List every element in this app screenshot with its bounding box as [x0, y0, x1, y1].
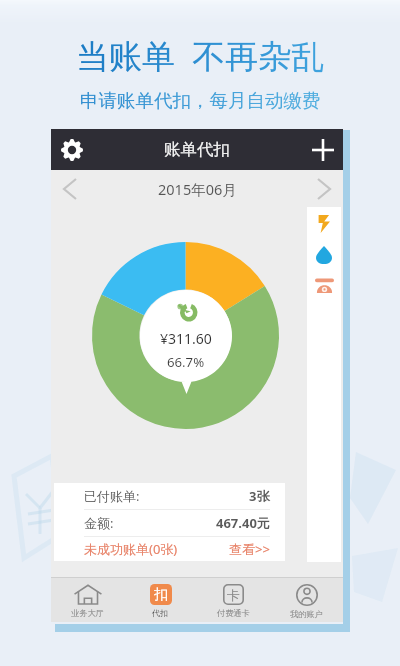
staticText: 66.7% — [167, 353, 205, 371]
staticText: 扣 — [154, 586, 168, 604]
button[interactable]: Settings — [51, 129, 92, 170]
button[interactable]: Next month — [305, 170, 343, 208]
button[interactable]: 业务大厅 — [51, 578, 124, 622]
button[interactable]: 已付账单: — [54, 483, 285, 509]
staticText: 金额: — [84, 514, 114, 532]
staticText: 未成功账单(0张) — [84, 540, 178, 558]
staticText: 查看>> — [229, 540, 270, 558]
button[interactable]: 金额: — [54, 510, 285, 536]
button[interactable]: Electricity — [307, 208, 341, 239]
staticText: 已付账单: — [84, 487, 140, 505]
button[interactable]: 扣 — [124, 578, 197, 622]
button[interactable]: Add — [303, 130, 343, 170]
staticText: 2015年06月 — [158, 179, 237, 199]
staticText: 账单代扣 — [164, 139, 230, 160]
staticText: 当账单 不再杂乱 — [76, 33, 325, 78]
staticText: 467.40元 — [216, 514, 270, 532]
staticText: 代扣 — [152, 608, 169, 618]
button[interactable]: 未成功账单(0张) — [54, 537, 285, 561]
button[interactable]: 我的账户 — [270, 578, 343, 622]
button[interactable]: 卡 — [197, 578, 270, 622]
staticText: 3张 — [249, 487, 270, 505]
button[interactable]: Water — [307, 239, 341, 270]
staticText: 我的账户 — [290, 609, 323, 619]
staticText: ¥311.60 — [160, 329, 212, 348]
staticText: 申请账单代扣，每月自动缴费 — [80, 89, 321, 112]
staticText: 业务大厅 — [71, 608, 104, 618]
staticText: 付费通卡 — [217, 608, 250, 618]
button[interactable]: Phone — [307, 270, 341, 301]
button[interactable]: Previous month — [51, 170, 89, 208]
staticText: 卡 — [227, 587, 240, 603]
